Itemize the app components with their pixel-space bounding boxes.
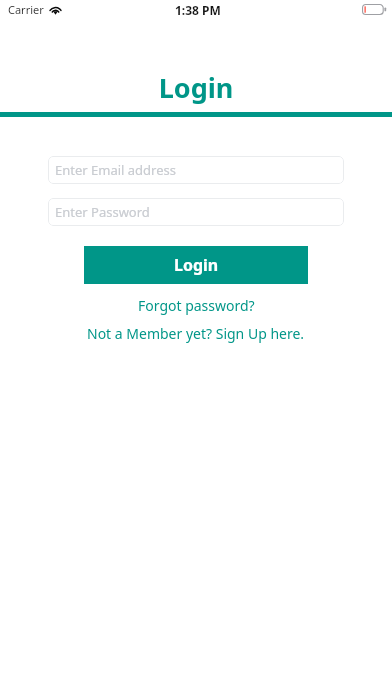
button[interactable]: Login	[84, 246, 308, 284]
button[interactable]: Enter Password	[48, 198, 344, 226]
button[interactable]: Forgot password?	[138, 296, 255, 315]
staticText: Login	[0, 69, 392, 106]
staticText: Enter Email address	[55, 161, 176, 179]
button[interactable]: Not a Member yet? Sign Up here.	[87, 324, 305, 343]
staticText: Carrier	[8, 2, 44, 17]
button[interactable]: Enter Email address	[48, 156, 344, 184]
other: Battery low	[362, 4, 387, 15]
other: Wi-Fi signal	[48, 4, 63, 14]
staticText: 1:38 PM	[175, 2, 221, 18]
staticText: Login	[174, 254, 219, 276]
staticText: Enter Password	[55, 203, 150, 221]
